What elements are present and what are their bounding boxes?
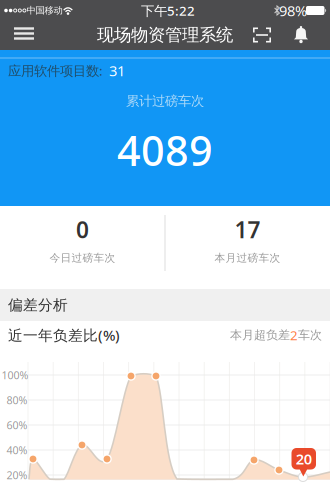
- staticText: 车次: [298, 328, 322, 342]
- staticText: 31: [109, 61, 125, 80]
- staticText: 现场物资管理系统: [97, 24, 233, 46]
- staticText: 20%: [6, 468, 27, 482]
- staticText: 100%: [1, 368, 28, 382]
- button[interactable]: Scan: [253, 27, 271, 42]
- staticText: 40%: [6, 443, 27, 457]
- staticText: 60%: [6, 418, 27, 432]
- staticText: 近一年负差比(%): [8, 325, 120, 345]
- staticText: 20: [296, 449, 312, 468]
- staticText: 本月超负差: [230, 328, 290, 342]
- staticText: 98%: [279, 1, 307, 20]
- staticText: 4089: [117, 123, 213, 177]
- staticText: 偏差分析: [8, 296, 68, 314]
- staticText: 下午5:22: [141, 2, 195, 19]
- staticText: 17: [234, 214, 260, 244]
- staticText: 应用软件项目数:: [8, 62, 103, 79]
- staticText: 2: [290, 326, 298, 344]
- staticText: 本月过磅车次: [214, 251, 280, 264]
- button[interactable]: Notifications: [293, 26, 309, 44]
- staticText: 中国移动: [26, 5, 62, 16]
- staticText: 80%: [6, 393, 27, 407]
- button[interactable]: Menu: [14, 27, 34, 40]
- staticText: 累计过磅车次: [126, 93, 204, 109]
- staticText: 今日过磅车次: [49, 251, 115, 264]
- staticText: 0: [76, 214, 89, 244]
